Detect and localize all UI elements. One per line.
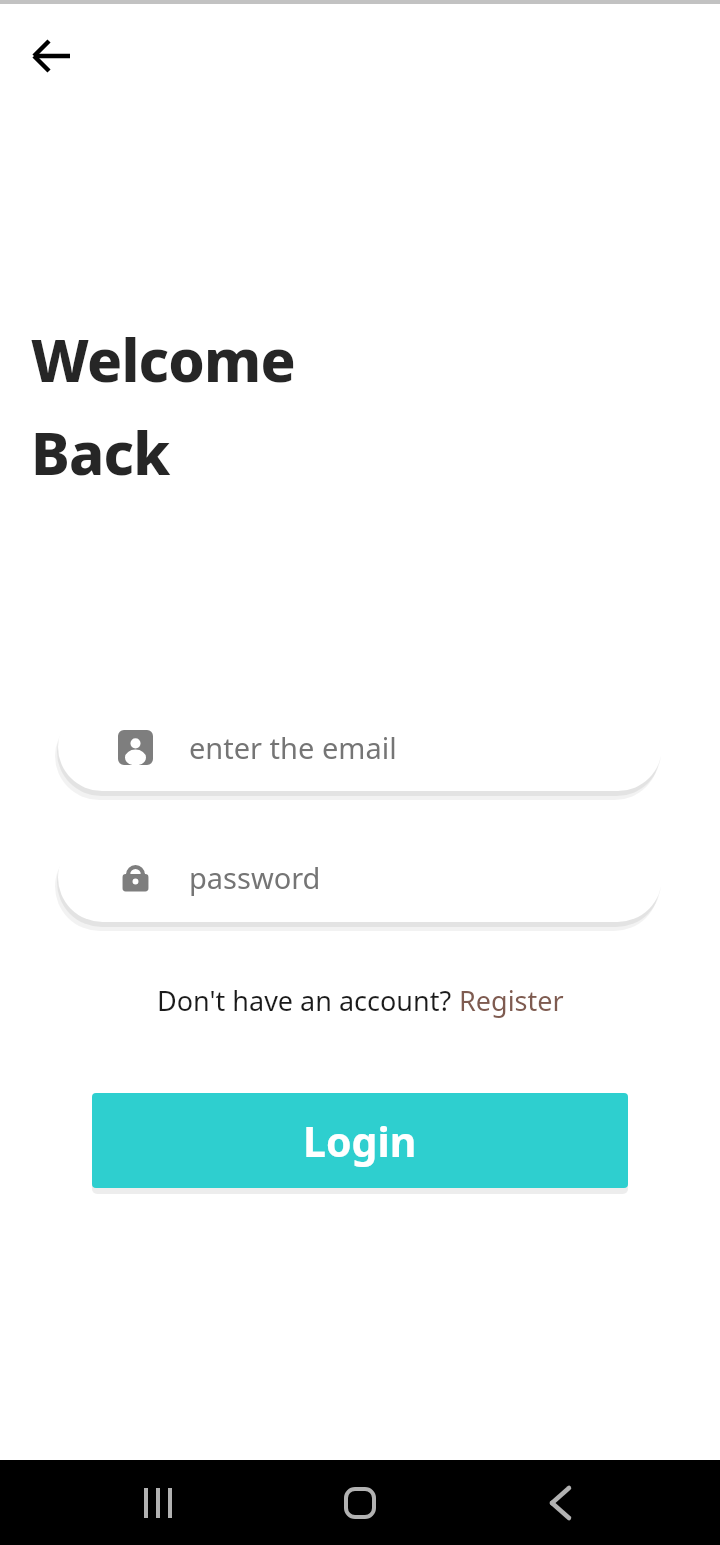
button[interactable]: Back bbox=[16, 24, 88, 88]
button[interactable]: Back bbox=[520, 1460, 600, 1545]
staticText: enter the email bbox=[189, 728, 397, 767]
staticText: Back bbox=[31, 413, 170, 492]
button[interactable]: Password field bbox=[58, 833, 662, 922]
staticText: Don't have an account? bbox=[157, 982, 459, 1019]
button[interactable]: Login bbox=[92, 1093, 628, 1188]
staticText: password bbox=[189, 858, 321, 897]
button[interactable]: Email field bbox=[58, 703, 662, 791]
button[interactable]: Home bbox=[320, 1460, 400, 1545]
button[interactable]: Recent apps bbox=[118, 1460, 198, 1545]
button[interactable]: Register bbox=[459, 982, 564, 1019]
staticText: Login bbox=[303, 1113, 417, 1169]
staticText: Welcome bbox=[31, 320, 295, 399]
staticText: Register bbox=[459, 982, 564, 1019]
